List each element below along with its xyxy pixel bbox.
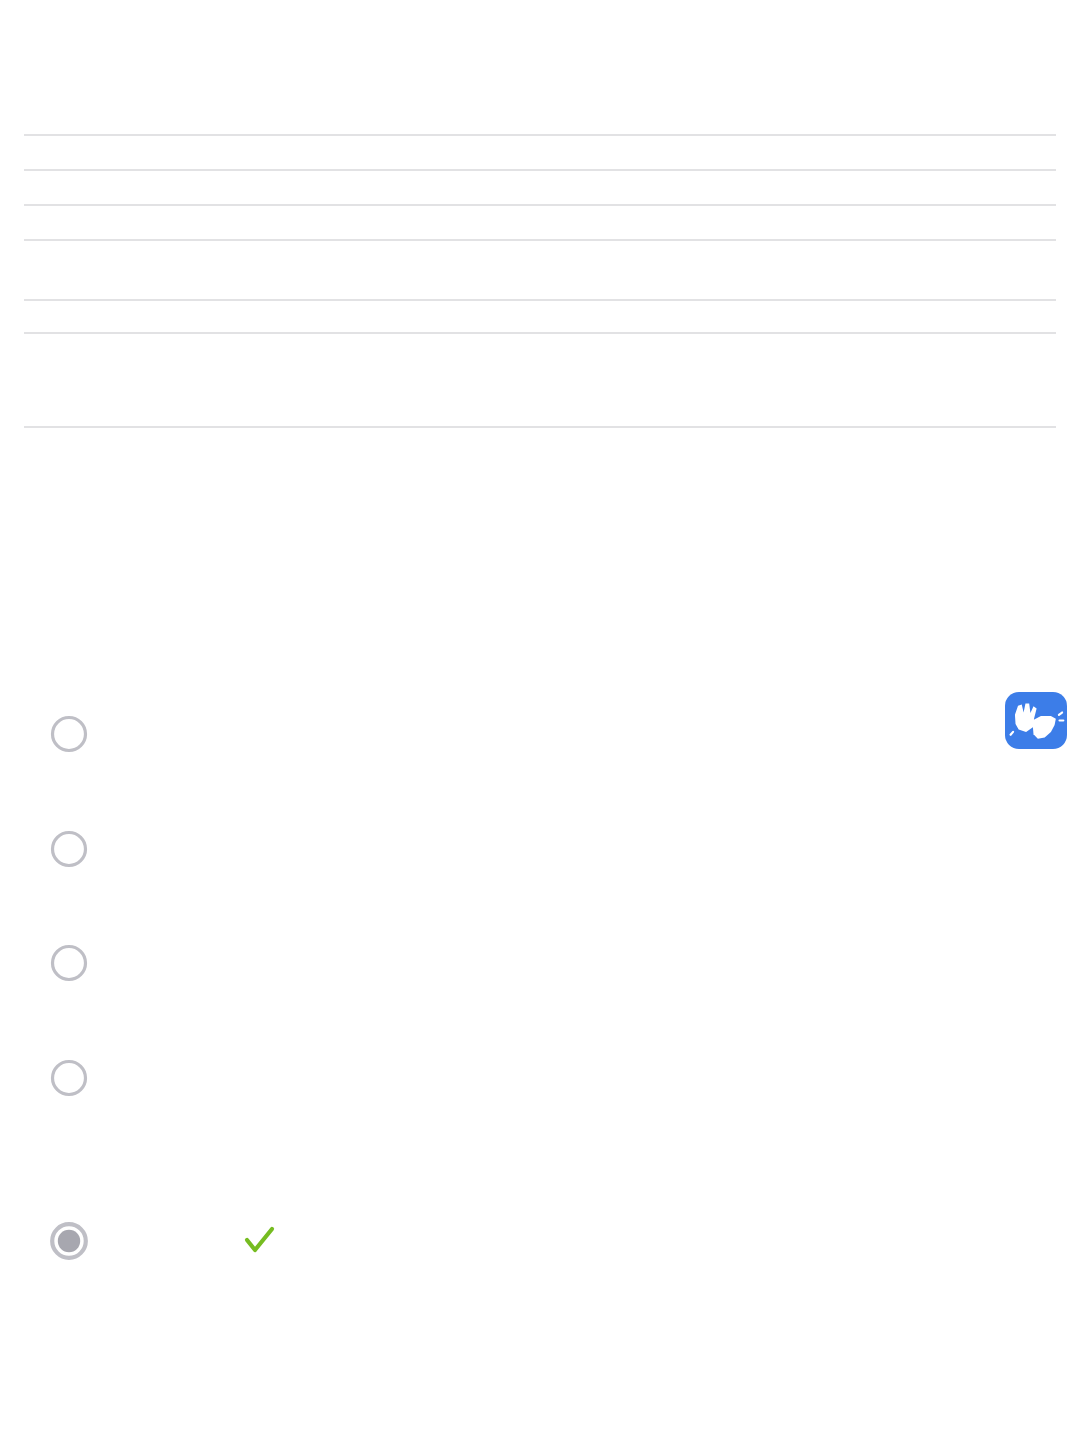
button[interactable]: Option 1 bbox=[30, 694, 110, 774]
button[interactable]: Option 2 bbox=[30, 809, 110, 889]
button[interactable]: Sign language bbox=[1005, 692, 1067, 749]
button[interactable]: Option 4 bbox=[30, 1038, 110, 1118]
button[interactable]: Selected option bbox=[29, 1201, 109, 1281]
button[interactable]: Option 3 bbox=[30, 923, 110, 1003]
